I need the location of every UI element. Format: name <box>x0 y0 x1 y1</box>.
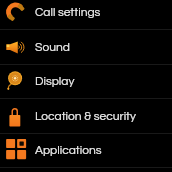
staticText: Location & security <box>35 110 136 122</box>
staticText: Applications <box>35 144 102 156</box>
staticText: Sound <box>35 41 70 53</box>
staticText: Display <box>35 75 75 87</box>
button[interactable]: Display <box>0 64 172 99</box>
button[interactable]: Location and security <box>0 99 172 134</box>
staticText: Call settings <box>35 6 101 18</box>
button[interactable]: Applications <box>0 133 172 168</box>
button[interactable]: Call settings <box>0 0 172 30</box>
button[interactable]: Sound <box>0 30 172 65</box>
